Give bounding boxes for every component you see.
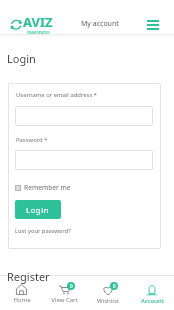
staticText: View Cart <box>51 296 78 304</box>
button[interactable]: Remember me <box>15 183 71 192</box>
staticText: 0 <box>70 283 73 289</box>
staticText: Lost your password? <box>15 227 71 235</box>
staticText: Register <box>7 269 50 284</box>
staticText: Login <box>7 51 36 66</box>
staticText: AVIZ <box>23 13 53 31</box>
button[interactable]: My account <box>77 15 123 33</box>
staticText: Username or email address * <box>16 91 98 99</box>
button[interactable]: 0 <box>86 276 130 305</box>
button[interactable]: Home <box>0 276 43 304</box>
button[interactable]: AVIZ <box>10 13 53 35</box>
button[interactable] <box>15 106 153 126</box>
staticText: Remember me <box>24 183 71 192</box>
staticText: My account <box>81 19 119 29</box>
button[interactable] <box>15 150 153 170</box>
staticText: Password * <box>16 136 48 144</box>
button[interactable]: Menu <box>143 15 163 35</box>
staticText: TRANSPORTATION <box>27 31 50 35</box>
button[interactable]: Lost your password? <box>15 227 71 235</box>
staticText: 0 <box>113 283 116 289</box>
button[interactable]: Login <box>15 200 61 219</box>
staticText: Account <box>141 297 164 305</box>
staticText: Home <box>13 296 31 304</box>
button[interactable]: Account <box>130 276 174 305</box>
staticText: Login <box>26 205 50 215</box>
button[interactable]: 0 <box>43 276 86 304</box>
staticText: Wishlist <box>97 297 119 305</box>
